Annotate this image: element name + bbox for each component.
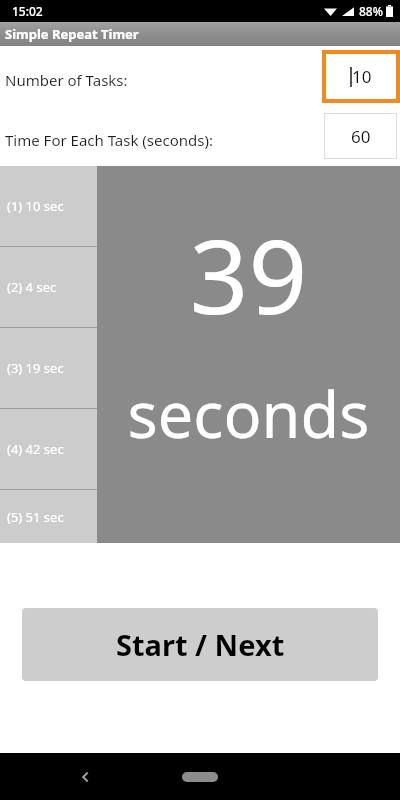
- staticText: (1) 10 sec: [7, 197, 64, 215]
- staticText: Simple Repeat Timer: [5, 25, 139, 43]
- staticText: Start / Next: [116, 625, 285, 664]
- button[interactable]: 10: [326, 54, 396, 99]
- button[interactable]: Home: [182, 772, 218, 782]
- button[interactable]: (1) 10 sec: [0, 166, 97, 246]
- staticText: seconds: [97, 371, 400, 457]
- staticText: 10: [352, 65, 372, 88]
- staticText: (5) 51 sec: [7, 508, 64, 526]
- staticText: 15:02: [12, 3, 43, 19]
- button[interactable]: (3) 19 sec: [0, 328, 97, 408]
- staticText: (3) 19 sec: [7, 359, 64, 377]
- staticText: Time For Each Task (seconds):: [5, 130, 213, 150]
- staticText: (2) 4 sec: [7, 278, 57, 296]
- button[interactable]: (4) 42 sec: [0, 409, 97, 489]
- button[interactable]: (5) 51 sec: [0, 490, 97, 543]
- staticText: 88%: [359, 3, 383, 19]
- staticText: Number of Tasks:: [5, 70, 128, 90]
- button[interactable]: Start / Next: [22, 608, 378, 681]
- button[interactable]: 60: [324, 113, 397, 159]
- button[interactable]: (2) 4 sec: [0, 247, 97, 327]
- staticText: 39: [97, 204, 400, 344]
- staticText: 60: [351, 125, 371, 148]
- button[interactable]: Back: [65, 756, 107, 798]
- staticText: (4) 42 sec: [7, 440, 64, 458]
